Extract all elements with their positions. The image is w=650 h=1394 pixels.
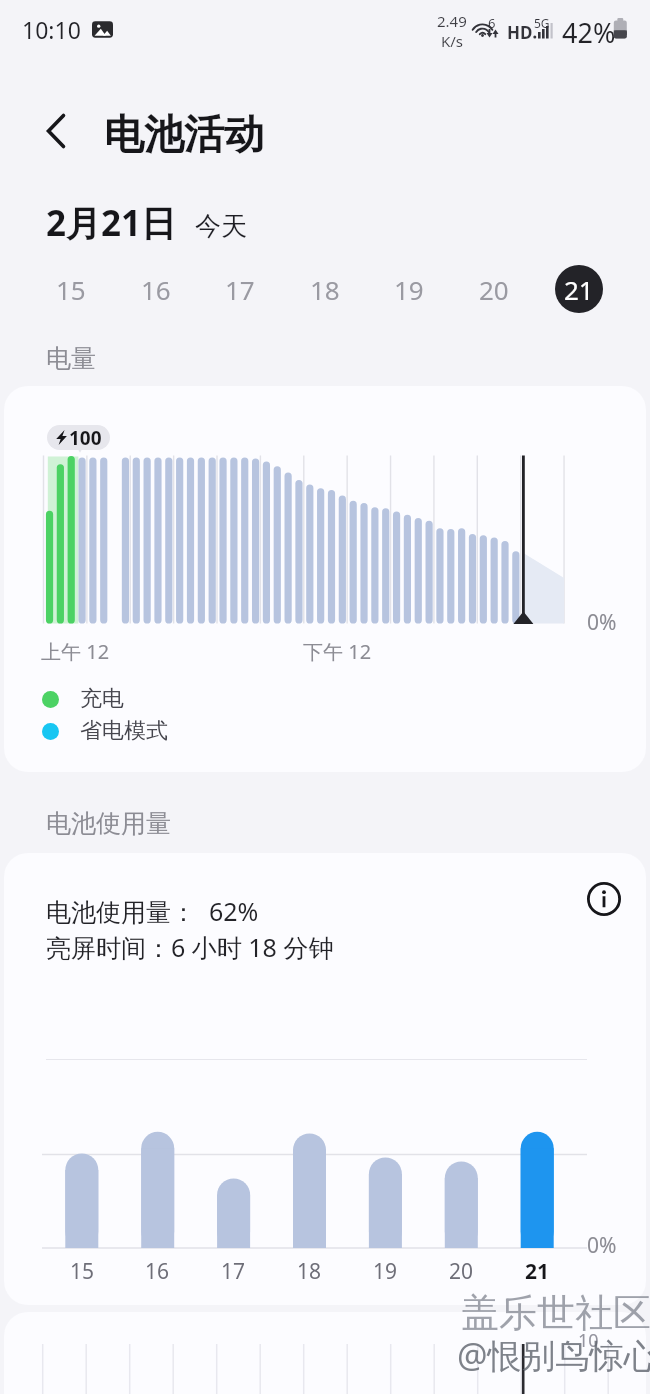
button[interactable]: 15 bbox=[47, 265, 95, 313]
staticText: 下午 12 bbox=[303, 638, 372, 665]
staticText: 18 bbox=[297, 1257, 322, 1285]
staticText: 100 bbox=[69, 425, 102, 450]
staticText: 17 bbox=[225, 272, 255, 307]
staticText: 盖乐世社区 bbox=[461, 1289, 650, 1337]
staticText: 6 bbox=[488, 14, 496, 32]
staticText: 亮屏时间：6 小时 18 分钟 bbox=[46, 930, 334, 964]
staticText: @恨别鸟惊心 bbox=[457, 1332, 650, 1378]
staticText: 20 bbox=[449, 1257, 474, 1285]
button[interactable]: 16 bbox=[132, 265, 180, 313]
staticText: 15 bbox=[70, 1257, 95, 1285]
staticText: 10:10 bbox=[22, 14, 81, 45]
staticText: HD bbox=[507, 21, 533, 44]
staticText: 电量 bbox=[46, 343, 96, 374]
staticText: 电池活动 bbox=[104, 109, 264, 159]
staticText: 电池使用量： 62% bbox=[46, 894, 259, 928]
button[interactable]: 18 bbox=[301, 265, 349, 313]
staticText: 10 bbox=[578, 1328, 599, 1353]
button[interactable]: Info bbox=[578, 873, 630, 925]
staticText: 21 bbox=[564, 272, 594, 307]
staticText: 16 bbox=[145, 1257, 170, 1285]
staticText: 今天 bbox=[195, 210, 247, 243]
staticText: 2.49 bbox=[437, 11, 467, 31]
staticText: 20 bbox=[479, 272, 509, 307]
button[interactable]: 19 bbox=[385, 265, 433, 313]
staticText: 0% bbox=[587, 1231, 617, 1260]
staticText: 19 bbox=[373, 1257, 398, 1285]
staticText: 42% bbox=[562, 14, 616, 51]
staticText: 上午 12 bbox=[41, 638, 110, 665]
button[interactable]: 21 bbox=[555, 265, 603, 313]
staticText: 2月21日 bbox=[46, 199, 177, 247]
staticText: K/s bbox=[441, 31, 464, 51]
staticText: 电池使用量 bbox=[46, 808, 171, 839]
staticText: 17 bbox=[221, 1257, 246, 1285]
staticText: 19 bbox=[394, 272, 424, 307]
staticText: 充电 bbox=[80, 685, 124, 713]
button[interactable]: Back bbox=[28, 105, 84, 157]
staticText: 15 bbox=[56, 272, 86, 307]
button[interactable]: 20 bbox=[470, 265, 518, 313]
staticText: 省电模式 bbox=[80, 717, 168, 745]
staticText: 16 bbox=[141, 272, 171, 307]
button[interactable]: 17 bbox=[216, 265, 264, 313]
staticText: 5G bbox=[534, 15, 550, 31]
staticText: 0% bbox=[587, 608, 617, 637]
staticText: 18 bbox=[310, 272, 340, 307]
staticText: 21 bbox=[525, 1257, 550, 1285]
